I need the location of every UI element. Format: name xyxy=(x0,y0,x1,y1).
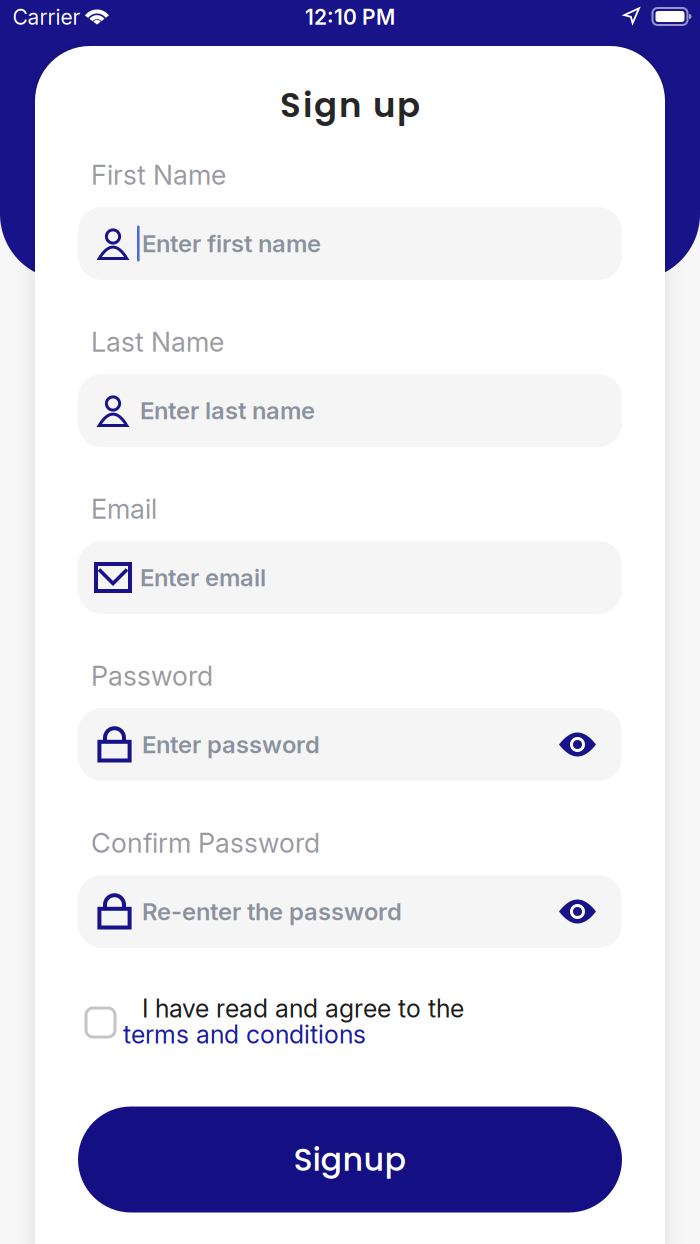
staticText: Sign up xyxy=(280,81,420,129)
staticText: Confirm Password xyxy=(91,827,320,859)
button[interactable]: Enter first name xyxy=(78,207,622,280)
button[interactable]: Enter email xyxy=(78,541,622,614)
staticText: First Name xyxy=(91,159,226,191)
staticText: Enter email xyxy=(140,563,266,592)
staticText: Enter password xyxy=(142,730,320,759)
button[interactable]: Enter password xyxy=(78,708,622,781)
button[interactable]: Enter last name xyxy=(78,374,622,447)
staticText: Email xyxy=(91,493,157,525)
staticText: 12:10 PM xyxy=(305,4,395,30)
staticText: terms and conditions xyxy=(123,1019,366,1050)
button[interactable]: terms and conditions xyxy=(123,1019,583,1050)
button[interactable]: Re-enter the password xyxy=(78,875,622,948)
staticText: Carrier xyxy=(12,4,80,30)
staticText: Re-enter the password xyxy=(142,897,402,926)
staticText: Last Name xyxy=(91,326,224,358)
staticText: Enter last name xyxy=(140,396,315,425)
staticText: Enter first name xyxy=(142,229,321,258)
staticText: Signup xyxy=(293,1137,406,1182)
button[interactable]: Signup xyxy=(78,1106,622,1212)
staticText: I have read and agree to the xyxy=(142,993,464,1024)
staticText: Password xyxy=(91,660,213,692)
button[interactable] xyxy=(86,1008,115,1037)
